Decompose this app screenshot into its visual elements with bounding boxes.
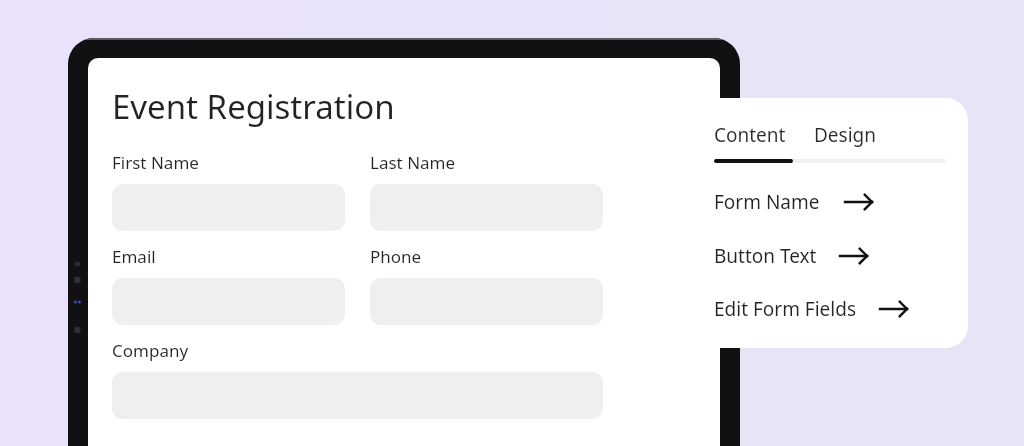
staticText: First Name	[112, 151, 199, 174]
other: Open	[844, 193, 874, 211]
staticText: Company	[112, 339, 189, 362]
staticText: Button Text	[714, 243, 817, 269]
button[interactable]: Form Name	[688, 189, 968, 215]
button[interactable]: Design	[814, 122, 877, 148]
staticText: Content	[714, 122, 786, 148]
staticText: Phone	[370, 245, 422, 268]
button[interactable]: Button Text	[688, 243, 968, 269]
staticText: Form Name	[714, 189, 820, 215]
button[interactable]: Content	[714, 122, 786, 148]
staticText: Edit Form Fields	[714, 296, 857, 322]
staticText: Last Name	[370, 151, 456, 174]
button[interactable]: Edit Form Fields	[688, 296, 968, 322]
staticText: Event Registration	[112, 84, 395, 129]
staticText: Email	[112, 245, 156, 268]
staticText: Design	[814, 122, 877, 148]
other: Open	[839, 247, 869, 265]
other: Open	[879, 300, 909, 318]
